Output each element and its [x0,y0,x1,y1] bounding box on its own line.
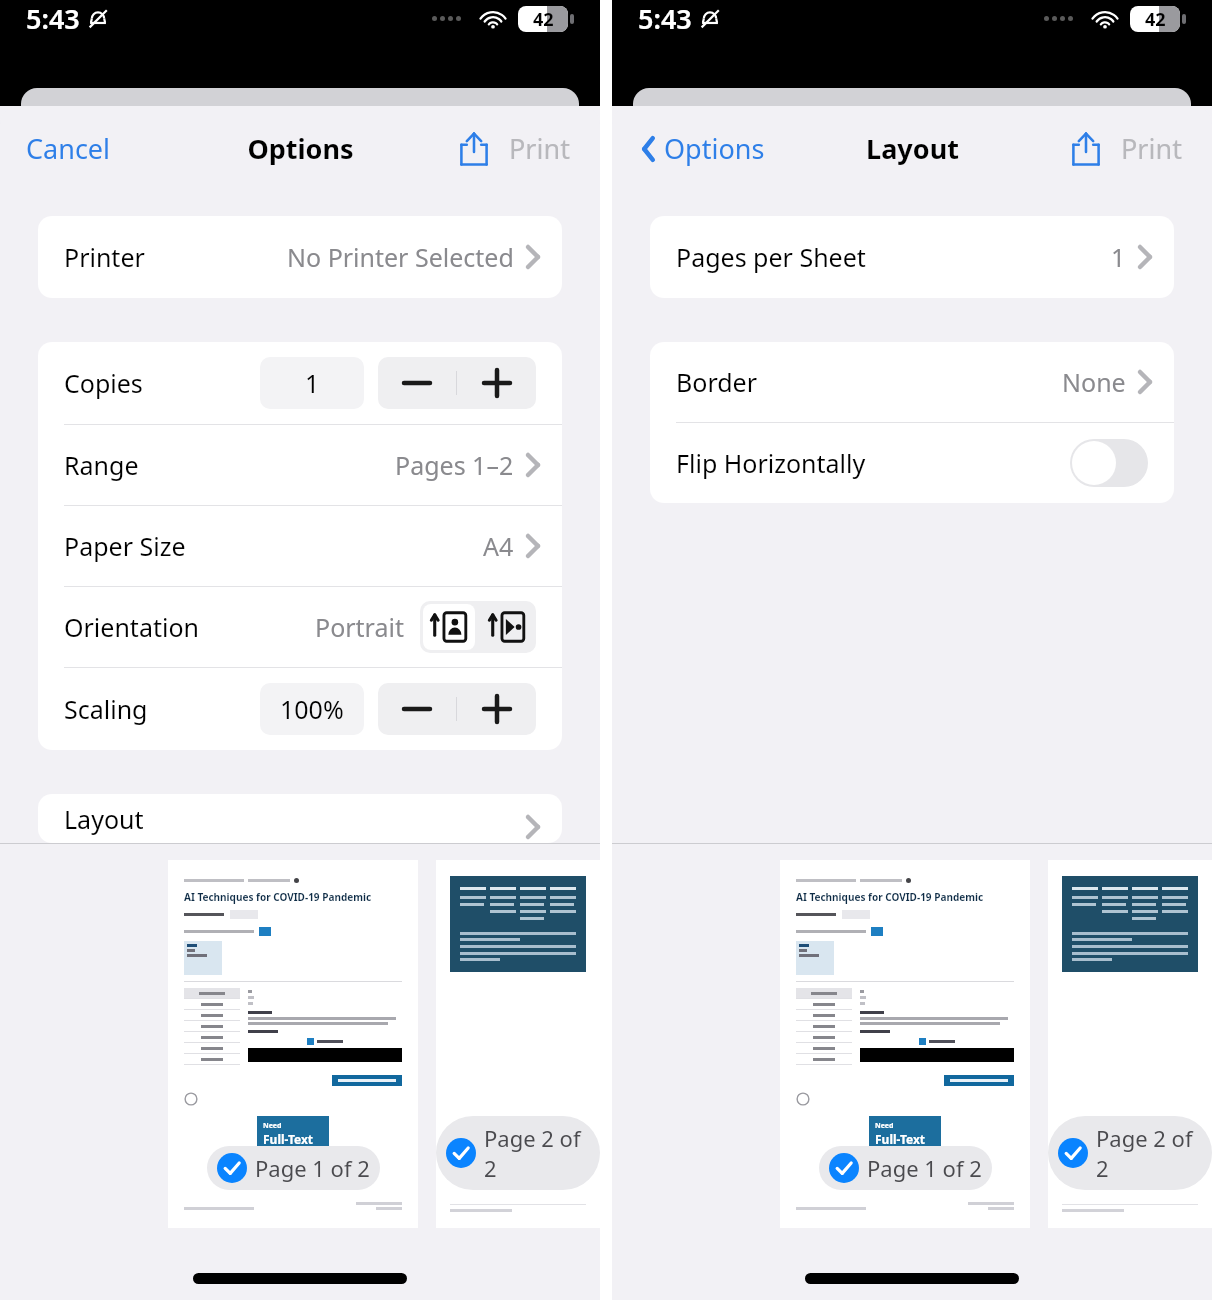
staticText: Page 2 of 2 [484,1123,590,1183]
button[interactable]: Increase [457,683,536,735]
staticText: None [1062,365,1126,399]
button[interactable]: Decrease [378,683,456,735]
staticText: 100% [280,692,344,726]
staticText: 42 [1145,7,1166,32]
button[interactable]: Layout [38,794,562,843]
staticText: Portrait [315,610,404,644]
button[interactable]: 100% [260,683,364,735]
staticText: 1 [1111,240,1126,274]
staticText: Border [676,365,758,399]
button[interactable]: Pages per Sheet [650,216,1174,298]
button[interactable]: Flip Horizontally [1070,439,1148,487]
staticText: Pages 1–2 [395,448,514,482]
button[interactable]: Share [1065,126,1188,171]
staticText: Options [664,130,765,167]
staticText: 42 [533,7,554,32]
staticText: Printer [64,240,145,274]
button[interactable]: Landscape [478,601,536,653]
button[interactable]: Options [636,122,769,175]
button[interactable]: Border [650,342,1174,422]
button[interactable]: Increase [457,357,536,409]
button[interactable]: Copies [38,342,562,424]
button[interactable]: Portrait [423,604,475,650]
button[interactable]: Decrease [378,357,456,409]
staticText: A4 [483,529,514,563]
staticText: Print [1121,130,1182,167]
staticText: AI Techniques for COVID-19 Pandemic [796,890,984,904]
staticText: Full-Text [875,1131,926,1147]
button[interactable]: AI Techniques for COVID-19 Pandemic [168,860,418,1228]
button[interactable]: Printer [38,216,562,298]
staticText: Cancel [26,130,111,167]
button[interactable]: Paper Size [38,506,562,586]
staticText: AI Techniques for COVID-19 Pandemic [184,890,372,904]
staticText: Layout [64,802,144,836]
button[interactable]: 1 [260,357,364,409]
staticText: Paper Size [64,529,186,563]
button[interactable]: Page 2 of 2 [436,860,600,1228]
staticText: 5:43 [638,0,692,37]
staticText: Page 2 of 2 [1096,1123,1202,1183]
button[interactable]: AI Techniques for COVID-19 Pandemic [780,860,1030,1228]
staticText: Need [875,1121,894,1131]
button[interactable]: Cancel [24,122,113,175]
staticText: Need [263,1121,282,1131]
button[interactable]: Range [38,425,562,505]
button[interactable]: Page 2 of 2 [1048,860,1212,1228]
staticText: Flip Horizontally [676,446,866,480]
staticText: Options [247,130,354,167]
staticText: Range [64,448,139,482]
staticText: Layout [866,130,959,167]
staticText: Orientation [64,610,199,644]
staticText: 5:43 [26,0,80,37]
staticText: Pages per Sheet [676,240,866,274]
button[interactable]: Share [453,126,576,171]
staticText: Page 1 of 2 [867,1153,982,1183]
staticText: Full-Text [263,1131,314,1147]
staticText: No Printer Selected [287,240,514,274]
staticText: Scaling [64,692,148,726]
staticText: 1 [305,366,320,400]
staticText: Page 1 of 2 [255,1153,370,1183]
staticText: Print [509,130,570,167]
staticText: Copies [64,366,143,400]
